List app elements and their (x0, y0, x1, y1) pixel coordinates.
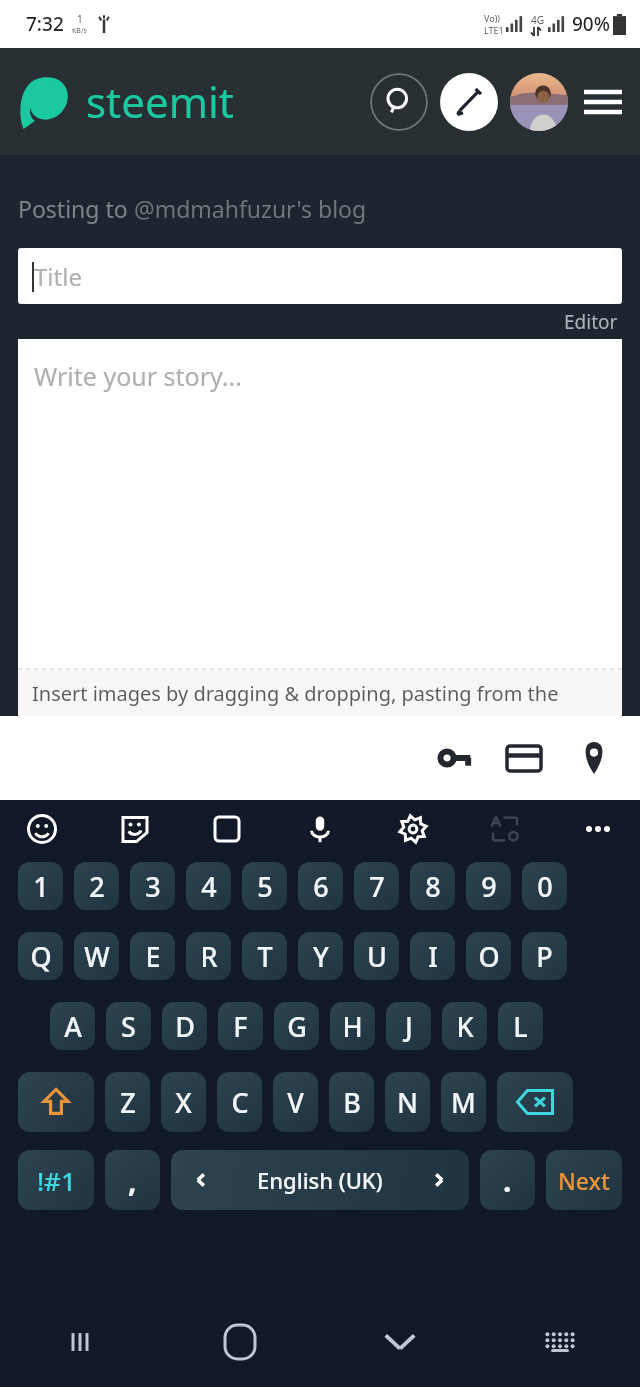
button[interactable]: I (410, 932, 455, 980)
button[interactable]: 7 (354, 862, 399, 910)
button[interactable]: O (466, 932, 511, 980)
button[interactable]: Location (570, 734, 618, 782)
button[interactable]: Voice input (298, 807, 342, 851)
button[interactable]: Profile (510, 73, 568, 131)
button[interactable]: B (329, 1072, 374, 1132)
button[interactable]: H (330, 1002, 375, 1050)
button[interactable]: More options (576, 807, 620, 851)
button[interactable]: S (106, 1002, 151, 1050)
button[interactable]: Switch keyboard (480, 1297, 640, 1387)
staticText: !#1 (37, 1163, 76, 1198)
button[interactable]: Z (105, 1072, 150, 1132)
staticText: B (343, 1084, 361, 1121)
button[interactable]: C (217, 1072, 262, 1132)
button[interactable]: D (162, 1002, 207, 1050)
staticText: K (456, 1008, 474, 1045)
button[interactable]: , (105, 1150, 160, 1210)
button[interactable]: 0 (522, 862, 567, 910)
button[interactable]: 4 (186, 862, 231, 910)
staticText: F (233, 1008, 248, 1045)
button[interactable]: L (498, 1002, 543, 1050)
button[interactable]: Search (370, 73, 428, 131)
button[interactable]: F (218, 1002, 263, 1050)
staticText: Vo)) (484, 12, 501, 24)
staticText: 8 (425, 868, 441, 905)
staticText: 4G (531, 13, 544, 27)
button[interactable]: 5 (242, 862, 287, 910)
button[interactable]: E (130, 932, 175, 980)
staticText: Posting to (18, 193, 134, 224)
button[interactable]: 9 (466, 862, 511, 910)
button[interactable]: X (161, 1072, 206, 1132)
button[interactable]: Title (18, 248, 622, 304)
button[interactable]: Translate (483, 807, 527, 851)
staticText: D (175, 1008, 195, 1045)
staticText: 0 (537, 868, 553, 905)
button[interactable]: K (442, 1002, 487, 1050)
staticText: C (231, 1084, 249, 1121)
button[interactable]: Password (432, 734, 480, 782)
staticText: M (451, 1084, 476, 1121)
button[interactable]: Sticker (113, 807, 157, 851)
staticText: Write your story... (34, 359, 242, 393)
staticText: H (342, 1008, 363, 1045)
button[interactable]: U (354, 932, 399, 980)
button[interactable]: Recent apps (0, 1297, 160, 1387)
staticText: KB/s (72, 26, 87, 36)
button[interactable]: Backspace (497, 1072, 573, 1132)
staticText: 6 (313, 868, 329, 905)
button[interactable]: 3 (130, 862, 175, 910)
staticText: A (64, 1008, 82, 1045)
staticText: Z (120, 1084, 136, 1121)
button[interactable]: Keyboard settings (391, 807, 435, 851)
staticText: 5 (257, 868, 273, 905)
button[interactable]: 6 (298, 862, 343, 910)
button[interactable]: V (273, 1072, 318, 1132)
staticText: Y (313, 938, 329, 975)
staticText: Editor (564, 309, 618, 335)
button[interactable]: Menu (580, 79, 626, 125)
staticText: T (257, 938, 273, 975)
button[interactable]: N (385, 1072, 430, 1132)
staticText: 1 (33, 868, 49, 905)
button[interactable]: Space, English (UK) (171, 1150, 469, 1210)
button[interactable]: Write post (440, 73, 498, 131)
staticText: LTE1 (484, 24, 504, 36)
button[interactable]: T (242, 932, 287, 980)
staticText: English (UK) (257, 1165, 383, 1195)
staticText: R (200, 938, 218, 975)
button[interactable]: 2 (74, 862, 119, 910)
button[interactable]: Emoji (20, 807, 64, 851)
button[interactable]: Home (160, 1297, 320, 1387)
button[interactable]: G (274, 1002, 319, 1050)
staticText: 1 (77, 12, 83, 26)
button[interactable]: Next (546, 1150, 622, 1210)
button[interactable]: Write your story... (18, 339, 622, 716)
staticText: . (503, 1160, 512, 1201)
button[interactable]: Q (18, 932, 63, 980)
staticText: P (536, 938, 553, 975)
staticText: Next (558, 1165, 610, 1196)
button[interactable]: J (386, 1002, 431, 1050)
button[interactable]: P (522, 932, 567, 980)
button[interactable]: Shift (18, 1072, 94, 1132)
button[interactable]: Hide keyboard (320, 1297, 480, 1387)
staticText: 90% (572, 11, 610, 37)
button[interactable]: 8 (410, 862, 455, 910)
button[interactable]: 1 (18, 862, 63, 910)
staticText: Q (30, 938, 52, 975)
staticText: S (121, 1008, 136, 1045)
button[interactable]: . (480, 1150, 535, 1210)
button[interactable]: Payment card (500, 734, 548, 782)
staticText: 2 (89, 868, 105, 905)
button[interactable]: !#1 (18, 1150, 94, 1210)
button[interactable]: W (74, 932, 119, 980)
staticText: 9 (481, 868, 497, 905)
button[interactable]: Y (298, 932, 343, 980)
staticText: W (84, 938, 110, 975)
button[interactable]: R (186, 932, 231, 980)
button[interactable]: A (50, 1002, 95, 1050)
button[interactable]: GIF (205, 807, 249, 851)
button[interactable]: M (441, 1072, 486, 1132)
staticText: 4 (201, 868, 217, 905)
